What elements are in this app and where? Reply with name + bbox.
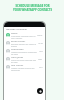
staticText: Scheduled message sent to your contact [11,35,36,39]
staticText: YOUR WHATSAPP CONTACTS [13,8,52,12]
button[interactable]: Mia Turner [4,63,45,71]
button[interactable]: Ethan Carter [4,39,45,47]
staticText: Yest [39,50,43,53]
button[interactable] [4,22,45,27]
staticText: Liam Jones [11,55,24,58]
staticText: Mia Turner [11,63,24,66]
staticText: Olivia [11,31,18,34]
button[interactable]: Sophia Bell [4,47,45,55]
staticText: Today [37,34,43,37]
staticText: SCHEDULE MESSAGE FOR [15,4,50,8]
staticText: Message Scheduler [6,28,27,31]
staticText: Meeting reminder scheduled for later [11,51,38,55]
staticText: 10:30 [38,42,43,45]
staticText: Weekly update queued for tomorrow [11,67,38,71]
staticText: Mon [38,58,43,61]
staticText: Sophia Bell [11,47,24,50]
staticText: Birthday wishes are ready to deliver [11,43,37,47]
staticText: Good morning message will be sent [11,59,37,63]
button[interactable]: Olivia [4,31,45,39]
button[interactable]: Liam Jones [4,55,45,63]
staticText: Ethan Carter [11,39,26,42]
staticText: Sun [39,66,43,69]
button[interactable]: New scheduled message [37,88,43,94]
